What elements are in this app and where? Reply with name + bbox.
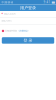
staticText: * (1, 12, 3, 16)
staticText: 9:41 ▮▮▮ (43, 0, 54, 4)
button[interactable]: 已阅读并同意 (0, 24, 56, 34)
staticText: 《注册协议》 (18, 30, 30, 32)
staticText: 用户登录 (20, 5, 36, 10)
button[interactable]: 登 录 (2, 37, 54, 44)
staticText: 请输入手机号 (3, 13, 15, 15)
staticText: 中国移动 (1, 1, 13, 4)
staticText: 已阅读并同意 (5, 30, 17, 32)
staticText: 请输入密码 (1, 19, 11, 22)
staticText: 登 录 (23, 38, 32, 43)
